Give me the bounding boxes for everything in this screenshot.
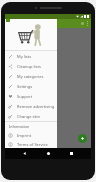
button[interactable]: Support bbox=[5, 91, 57, 101]
button[interactable]: Back bbox=[21, 150, 28, 157]
button[interactable]: Remove advertising bbox=[5, 101, 57, 111]
button[interactable]: Terms of Service bbox=[5, 140, 57, 148]
button[interactable]: Search bbox=[81, 22, 84, 25]
staticText: Cleanup lists bbox=[17, 64, 41, 69]
button[interactable]: More options bbox=[87, 21, 88, 26]
button[interactable]: Cleanup lists bbox=[5, 61, 57, 71]
button[interactable]: My categories bbox=[5, 71, 57, 81]
button[interactable] bbox=[13, 34, 35, 42]
button[interactable]: Recent apps bbox=[68, 150, 75, 157]
button[interactable]: My lists bbox=[5, 51, 57, 61]
button[interactable]: Imprint bbox=[5, 130, 57, 140]
button[interactable]: Change skin bbox=[5, 111, 57, 121]
staticText: Imprint bbox=[17, 133, 32, 138]
staticText: My categories bbox=[17, 74, 44, 79]
button[interactable]: Settings bbox=[5, 81, 57, 91]
staticText: Remove advertising bbox=[17, 104, 55, 109]
button[interactable]: Home bbox=[45, 150, 52, 157]
staticText: My lists bbox=[17, 54, 32, 59]
staticText: Change skin bbox=[17, 114, 41, 119]
staticText: Terms of Service bbox=[17, 142, 48, 147]
staticText: Settings bbox=[17, 84, 33, 89]
staticText: Support bbox=[17, 94, 33, 99]
staticText: Information bbox=[9, 124, 30, 129]
button[interactable]: Add bbox=[78, 134, 87, 143]
